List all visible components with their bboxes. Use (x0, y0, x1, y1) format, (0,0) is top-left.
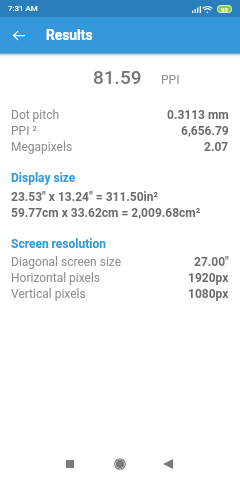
staticText: 0.3113 mm (167, 108, 229, 122)
button[interactable]: Back (154, 450, 182, 478)
staticText: PPI ² (11, 124, 37, 138)
staticText: Results (46, 27, 93, 43)
staticText: Screen resolution (11, 237, 106, 251)
button[interactable]: Recent apps (56, 450, 84, 478)
staticText: 1080px (188, 287, 229, 301)
staticText: Display size (11, 171, 76, 185)
staticText: 1920px (188, 271, 229, 285)
button[interactable]: Home (106, 450, 134, 478)
button[interactable]: Back (5, 17, 33, 53)
staticText: 2.07 (204, 140, 229, 154)
staticText: 59.77cm x 33.62cm = 2,009.68cm² (11, 206, 201, 220)
staticText: Megapixels (11, 140, 73, 154)
staticText: Diagonal screen size (11, 255, 122, 269)
staticText: 81.59 (93, 66, 142, 88)
staticText: 27.00" (194, 255, 229, 269)
staticText: 93 (221, 6, 228, 13)
staticText: 23.53" x 13.24" = 311.50in² (11, 190, 158, 204)
staticText: 6,656.79 (181, 124, 229, 138)
staticText: Dot pitch (11, 108, 60, 122)
staticText: Vertical pixels (11, 287, 86, 301)
staticText: 7:31 AM (8, 4, 38, 13)
staticText: Horizontal pixels (11, 271, 101, 285)
staticText: PPI (161, 73, 180, 87)
